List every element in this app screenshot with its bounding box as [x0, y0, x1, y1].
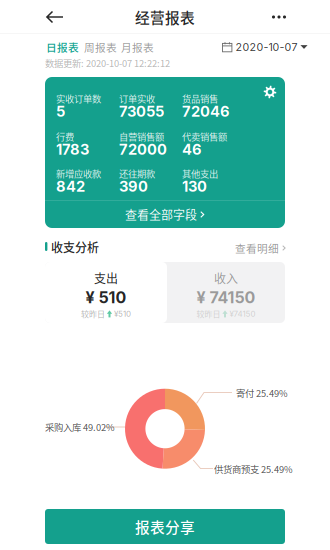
- staticText: 还往期款: [119, 167, 155, 180]
- button[interactable]: 周报表: [84, 39, 118, 55]
- button[interactable]: 2020-10-07: [222, 39, 308, 55]
- staticText: 收入: [214, 269, 238, 287]
- staticText: 订单实收: [119, 92, 155, 105]
- staticText: 72000: [119, 141, 167, 158]
- staticText: 842: [56, 178, 85, 195]
- staticText: 货品销售: [182, 92, 218, 105]
- staticText: 新增应收款: [56, 167, 101, 180]
- staticText: 月报表: [121, 39, 154, 55]
- button[interactable]: 返回: [38, 4, 72, 30]
- staticText: 查看明细: [235, 240, 279, 256]
- staticText: 查看全部字段: [125, 206, 197, 223]
- button[interactable]: 设置: [259, 81, 281, 103]
- staticText: 其他支出: [182, 167, 218, 180]
- staticText: 73055: [119, 103, 164, 120]
- staticText: 经营报表: [135, 6, 195, 28]
- staticText: 寄付 25.49%: [236, 386, 288, 400]
- staticText: ¥74150: [230, 309, 256, 319]
- button[interactable]: 月报表: [121, 39, 155, 55]
- staticText: 供货商预支 25.49%: [214, 462, 293, 476]
- staticText: 收支分析: [51, 238, 99, 256]
- staticText: 日报表: [46, 39, 79, 55]
- staticText: 较昨日: [81, 308, 105, 320]
- staticText: 自营销售额: [119, 130, 164, 143]
- button[interactable]: 更多: [262, 4, 296, 30]
- staticText: 较昨日: [196, 308, 220, 320]
- staticText: 行费: [56, 130, 74, 143]
- staticText: 2020-10-07: [235, 40, 297, 53]
- staticText: 130: [182, 178, 207, 195]
- staticText: 采购入库 49.02%: [45, 420, 115, 434]
- staticText: 支出: [94, 269, 118, 287]
- staticText: 周报表: [84, 39, 117, 55]
- staticText: 46: [182, 141, 202, 158]
- staticText: ¥ 510: [85, 288, 126, 307]
- staticText: 代卖销售额: [182, 130, 227, 143]
- staticText: 数据更新: 2020-10-07 12:22:12: [45, 56, 170, 70]
- staticText: 实收订单数: [56, 92, 101, 105]
- staticText: 72046: [182, 103, 230, 120]
- button[interactable]: 查看明细: [235, 240, 286, 256]
- button[interactable]: 报表分享: [45, 509, 285, 544]
- staticText: ¥510: [114, 309, 131, 319]
- staticText: 1783: [56, 141, 89, 158]
- staticText: ¥ 74150: [196, 288, 255, 307]
- button[interactable]: 查看全部字段: [45, 201, 285, 228]
- button[interactable]: 日报表: [46, 39, 80, 55]
- staticText: 390: [119, 178, 148, 195]
- staticText: 报表分享: [135, 516, 195, 537]
- staticText: 5: [56, 103, 65, 120]
